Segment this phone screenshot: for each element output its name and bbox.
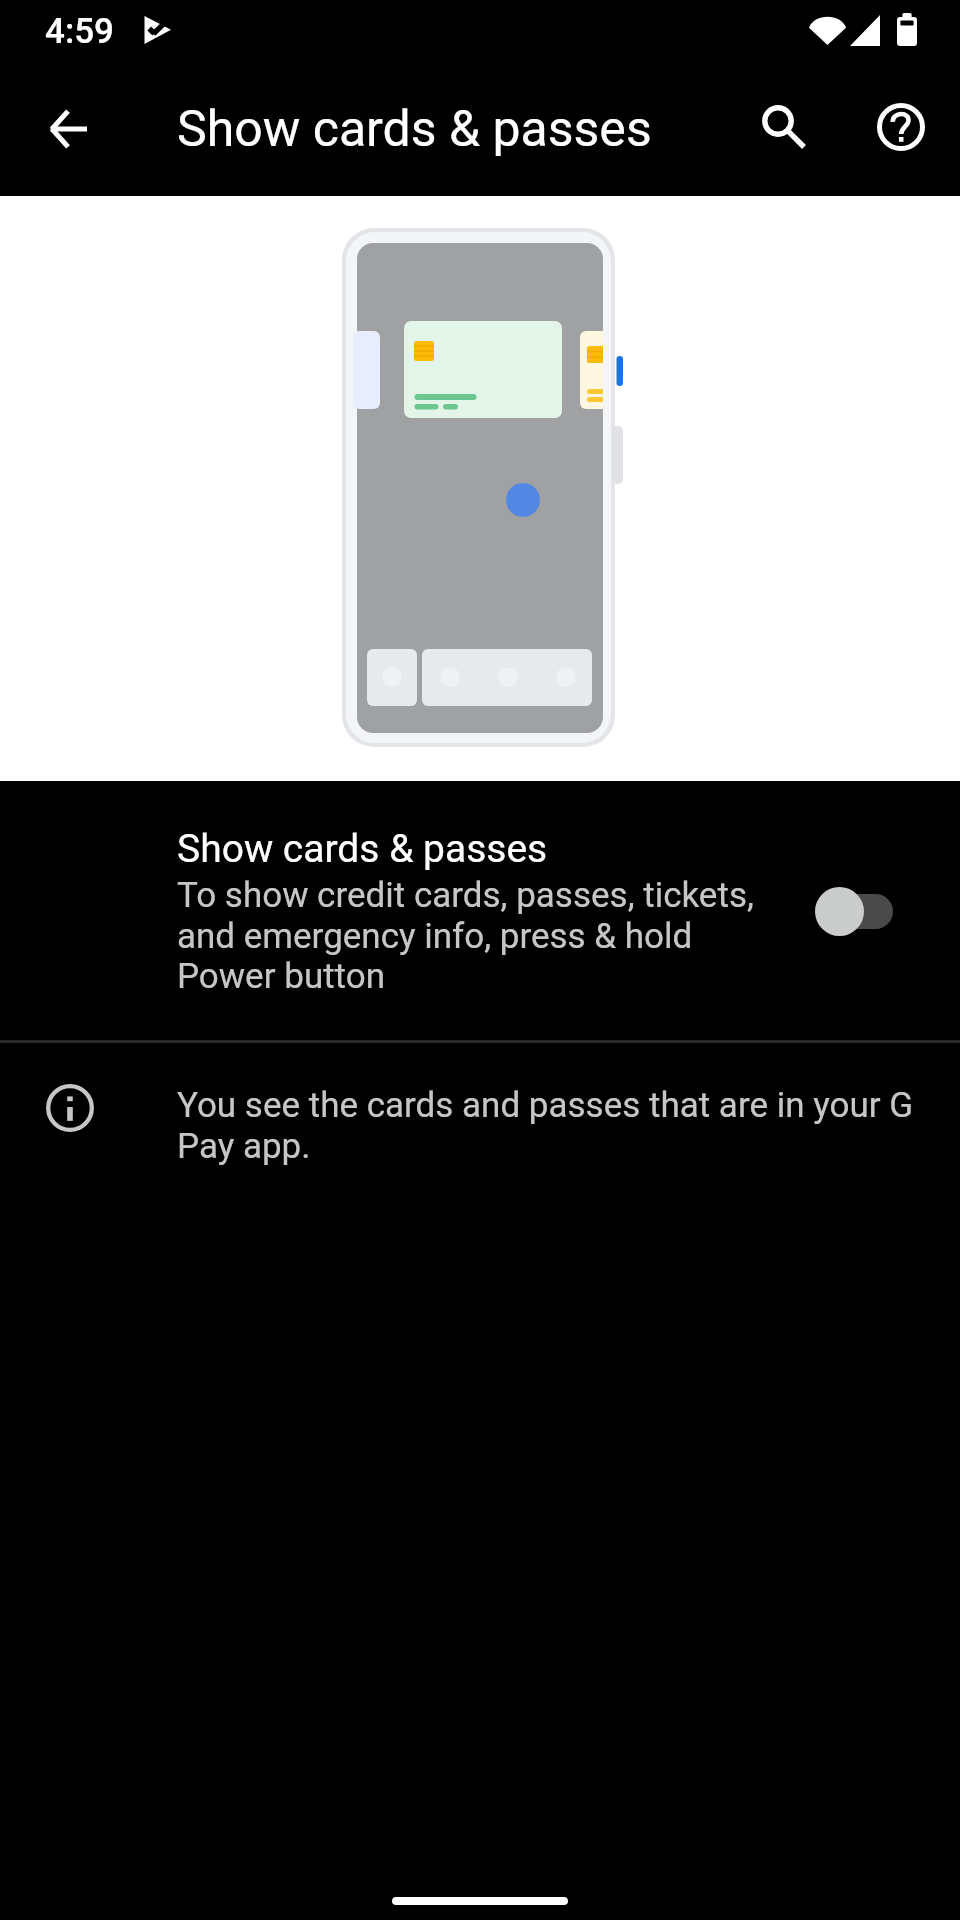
button[interactable]: Search [733,84,827,178]
staticText: 4:59 [45,11,114,52]
button[interactable]: Help [854,80,948,174]
staticText: To show credit cards, passes, tickets, a… [177,875,787,996]
button[interactable]: Show cards & passes toggle, off [824,856,960,966]
staticText: Show cards & passes [177,100,652,159]
button[interactable]: Show cards & passes [0,781,960,1040]
staticText: You see the cards and passes that are in… [177,1085,942,1166]
button[interactable]: Navigate up [14,75,122,183]
staticText: Show cards & passes [177,826,548,872]
